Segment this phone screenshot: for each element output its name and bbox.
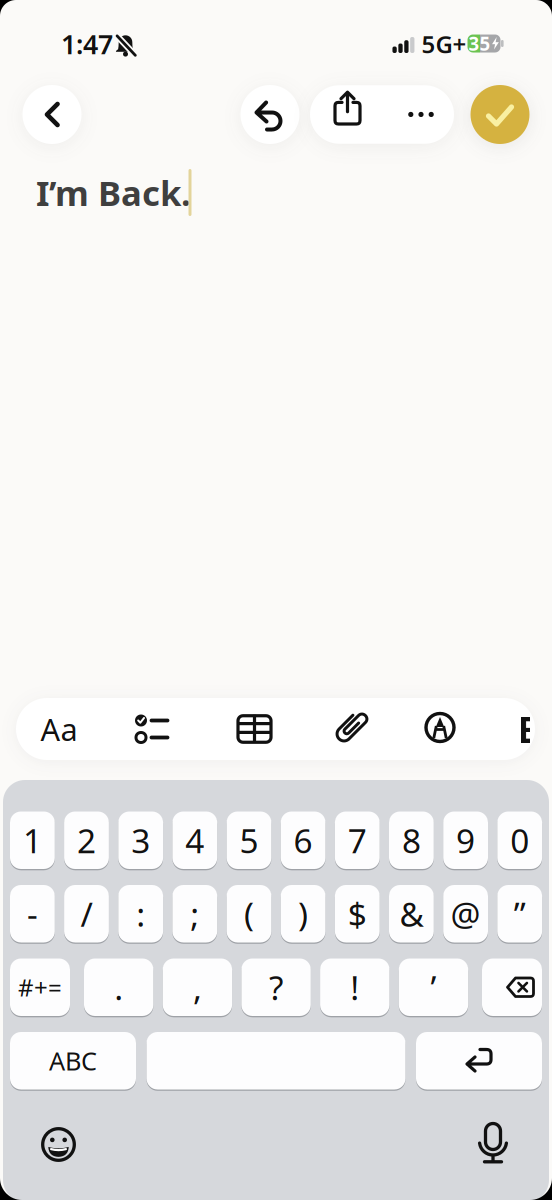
staticText: ? <box>269 965 283 1009</box>
button[interactable]: 9 <box>443 811 488 869</box>
staticText: $ <box>348 892 367 936</box>
button[interactable]: - <box>10 885 55 942</box>
staticText: 9 <box>456 818 475 862</box>
staticText: & <box>399 892 423 936</box>
button[interactable]: & <box>389 885 434 942</box>
button[interactable]: More <box>391 85 451 144</box>
staticText: : <box>136 892 145 936</box>
staticText: , <box>193 965 202 1009</box>
button[interactable]: Markup <box>410 698 470 760</box>
staticText: ) <box>298 892 308 936</box>
button[interactable]: 6 <box>281 811 325 869</box>
staticText: 1:47 <box>61 26 113 62</box>
button[interactable]: 4 <box>172 811 217 869</box>
button[interactable]: 8 <box>389 811 434 869</box>
button[interactable]: Checklist <box>121 698 181 760</box>
button[interactable]: Dictate <box>465 1116 521 1172</box>
staticText: 4 <box>185 818 204 862</box>
staticText: 6 <box>294 818 313 862</box>
button[interactable]: ; <box>172 885 217 942</box>
button[interactable]: Back <box>22 85 81 144</box>
button[interactable]: ’ <box>399 958 468 1016</box>
staticText: 8 <box>402 818 421 862</box>
staticText: ABC <box>49 1044 97 1077</box>
staticText: ; <box>190 892 199 936</box>
button[interactable]: ? <box>241 958 311 1016</box>
staticText: 35 <box>469 31 491 56</box>
staticText: Aa <box>40 709 77 749</box>
button[interactable]: Return <box>416 1032 542 1089</box>
staticText: 3 <box>131 818 150 862</box>
button[interactable]: $ <box>335 885 380 942</box>
button[interactable]: ABC <box>10 1032 136 1089</box>
button[interactable]: space <box>146 1032 405 1089</box>
button[interactable]: : <box>118 885 163 942</box>
button[interactable]: 7 <box>335 811 380 869</box>
staticText: 5 <box>239 818 258 862</box>
button[interactable]: Bold <box>517 698 529 760</box>
staticText: ” <box>514 892 526 936</box>
staticText: - <box>27 892 38 936</box>
staticText: 0 <box>510 818 529 862</box>
button[interactable]: ” <box>497 885 542 942</box>
staticText: #+= <box>18 971 62 1003</box>
button[interactable]: , <box>163 958 232 1016</box>
button[interactable]: ) <box>281 885 325 942</box>
button[interactable]: 0 <box>497 811 542 869</box>
button[interactable]: 1 <box>10 811 55 869</box>
button[interactable]: Attach <box>319 698 379 760</box>
staticText: B <box>517 705 541 753</box>
button[interactable]: Undo <box>240 85 299 144</box>
staticText: 1 <box>23 818 42 862</box>
staticText: / <box>80 892 92 936</box>
staticText: 5G+ <box>421 28 466 60</box>
staticText: ! <box>350 965 359 1009</box>
button[interactable]: Table <box>224 698 284 760</box>
button[interactable]: #+= <box>10 958 70 1016</box>
staticText: I’m Back. <box>36 169 191 215</box>
button[interactable]: ( <box>227 885 271 942</box>
staticText: 2 <box>77 818 96 862</box>
staticText: 7 <box>348 818 367 862</box>
button[interactable]: ! <box>320 958 389 1016</box>
button[interactable]: Format <box>29 698 89 760</box>
button[interactable]: @ <box>443 885 488 942</box>
button[interactable]: Share <box>317 85 377 144</box>
button[interactable]: Delete <box>482 958 542 1016</box>
staticText: . <box>114 965 123 1009</box>
button[interactable]: Done <box>470 85 529 144</box>
staticText: ’ <box>430 965 436 1009</box>
button[interactable]: / <box>64 885 109 942</box>
button[interactable]: 3 <box>118 811 163 869</box>
button[interactable]: . <box>84 958 153 1016</box>
staticText: ( <box>244 892 254 936</box>
button[interactable]: 5 <box>227 811 271 869</box>
button[interactable]: 2 <box>64 811 109 869</box>
button[interactable]: Emoji <box>30 1116 86 1172</box>
staticText: @ <box>451 892 481 936</box>
